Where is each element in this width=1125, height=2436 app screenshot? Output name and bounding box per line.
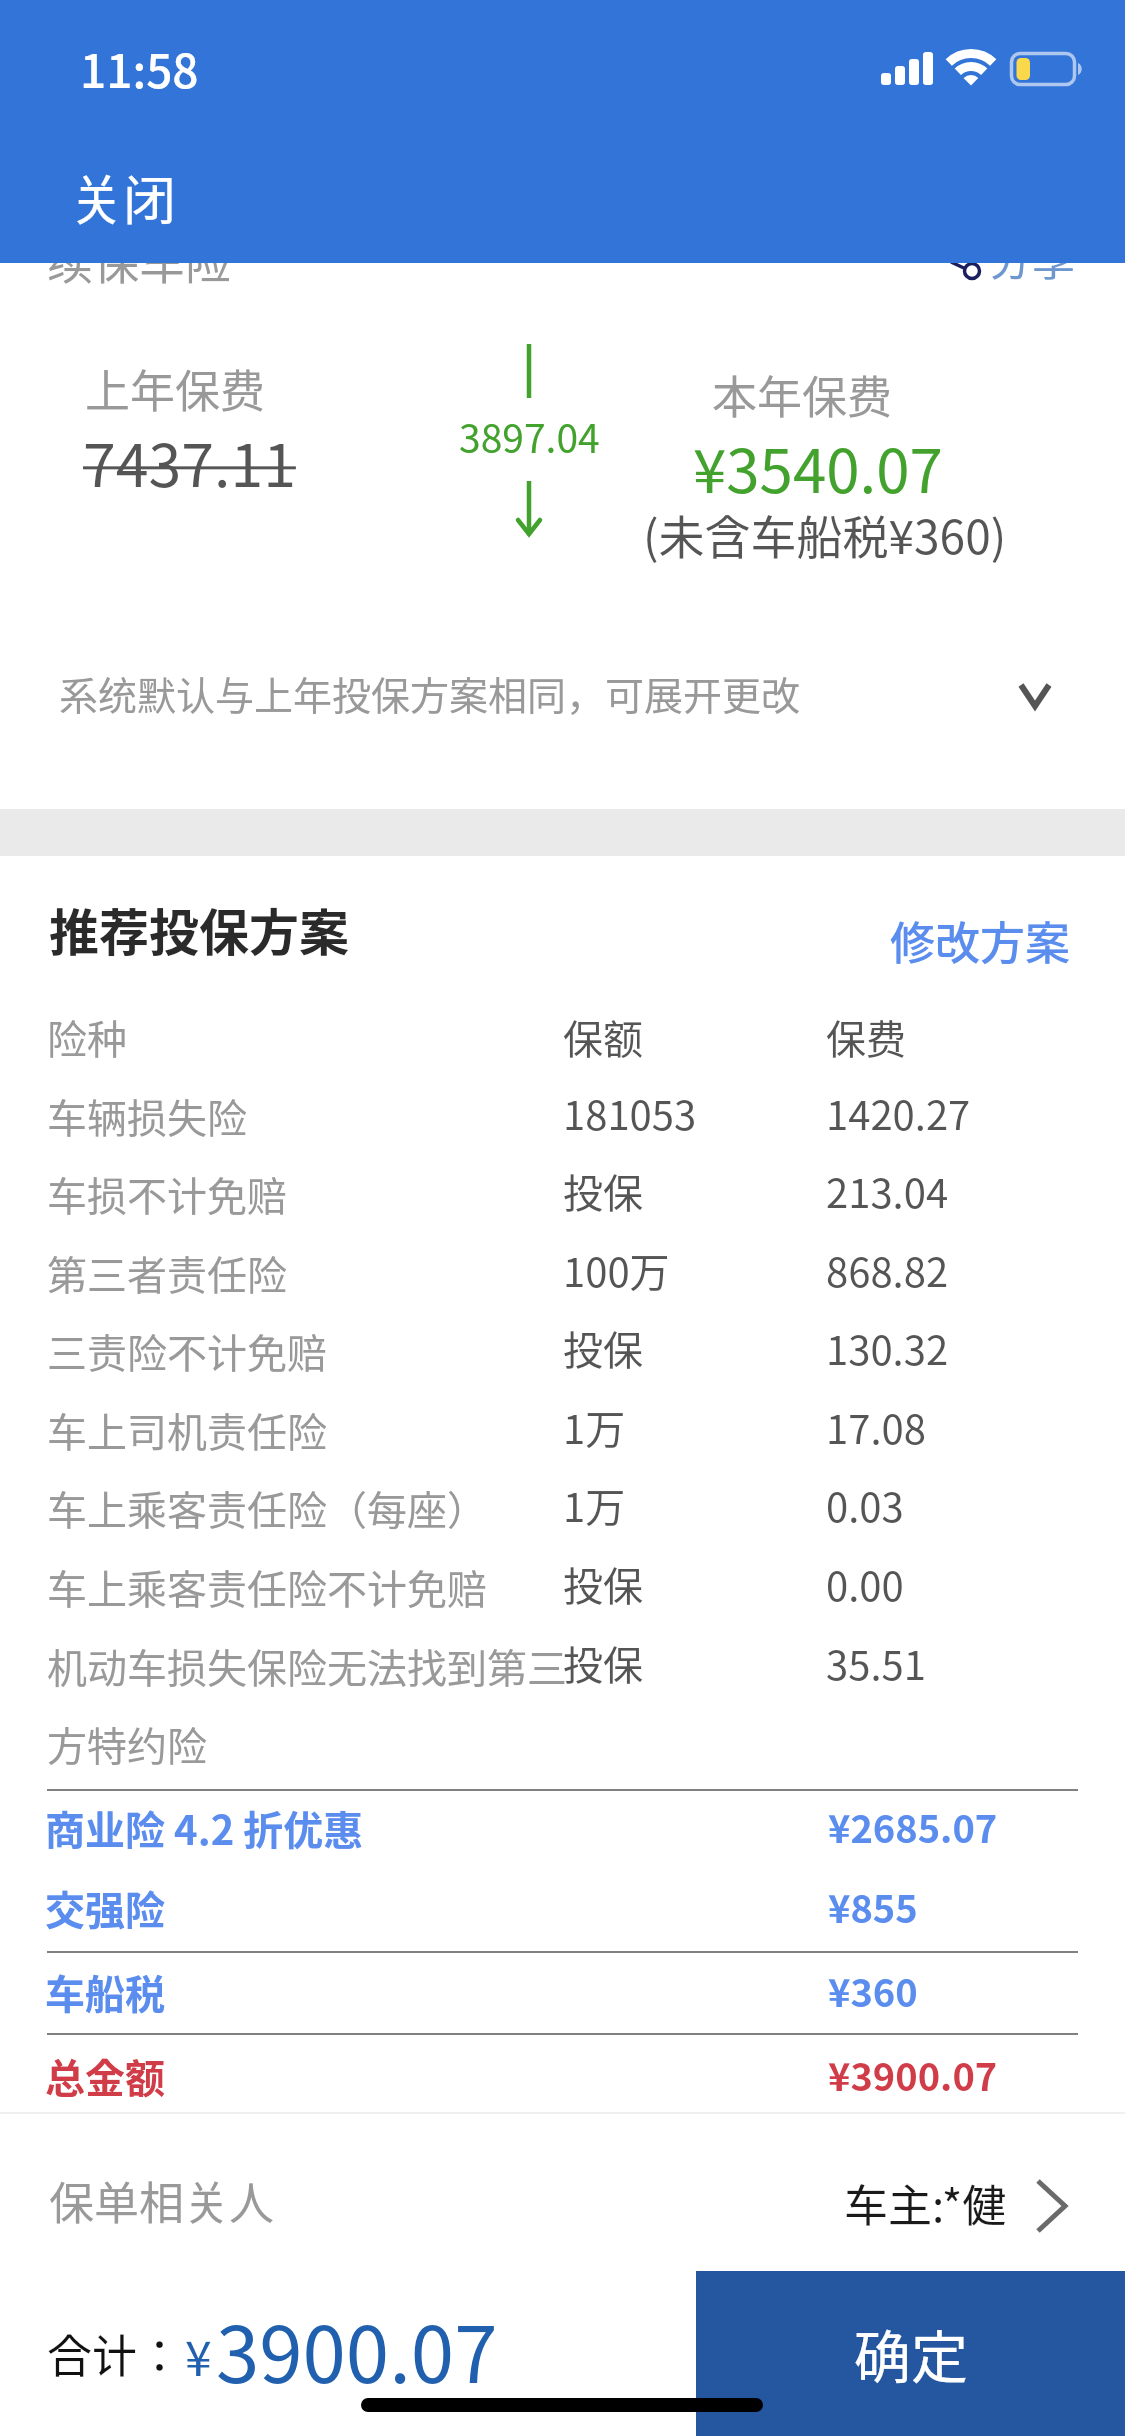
staticText: 交强险 — [45, 1879, 165, 1937]
staticText: ¥3540.07 — [693, 423, 943, 510]
staticText: 11:58 — [80, 35, 199, 102]
button[interactable]: 商业险 4.2 折优惠 — [0, 1795, 1125, 1861]
staticText: 213.04 — [826, 1162, 949, 1220]
staticText: 3900.07 — [216, 2293, 498, 2406]
staticText: 1万 — [563, 1476, 626, 1534]
staticText: 保单相关人 — [49, 2168, 275, 2233]
staticText: 7437.11 — [83, 419, 296, 504]
button[interactable]: 修改方案 — [880, 898, 1081, 983]
staticText: 0.00 — [826, 1555, 904, 1613]
staticText: 保费 — [826, 1008, 906, 1066]
staticText: 保额 — [563, 1008, 643, 1066]
staticText: 险种 — [47, 1008, 127, 1066]
button[interactable]: 确定 — [696, 2271, 1125, 2436]
staticText: 868.82 — [826, 1241, 949, 1299]
staticText: 181053 — [563, 1084, 697, 1142]
staticText: 35.51 — [826, 1634, 926, 1692]
staticText: 机动车损失保险无法找到第三 — [47, 1637, 567, 1695]
staticText: ¥3900.07 — [828, 2047, 998, 2102]
staticText: 方特约险 — [47, 1715, 207, 1773]
button[interactable]: 关闭 — [70, 159, 176, 236]
staticText: 分享 — [989, 226, 1075, 288]
staticText: 关闭 — [70, 159, 176, 236]
staticText: 车主:*健 — [844, 2171, 1007, 2235]
staticText: 车上司机责任险 — [47, 1401, 327, 1459]
staticText: 100万 — [563, 1241, 670, 1299]
staticText: 投保 — [563, 1319, 643, 1377]
staticText: ¥ — [185, 2320, 212, 2390]
staticText: 车损不计免赔 — [47, 1165, 287, 1223]
staticText: 推荐投保方案 — [49, 893, 349, 965]
staticText: 续保车险 — [47, 226, 231, 293]
staticText: 确定 — [854, 2312, 968, 2395]
staticText: 130.32 — [826, 1319, 949, 1377]
staticText: 1万 — [563, 1398, 626, 1456]
staticText: 上年保费 — [85, 356, 266, 421]
button[interactable]: 总金额 — [0, 2043, 1125, 2109]
staticText: 17.08 — [826, 1398, 926, 1456]
staticText: 修改方案 — [890, 908, 1071, 973]
staticText: 商业险 4.2 折优惠 — [45, 1799, 364, 1857]
staticText: 0.03 — [826, 1476, 904, 1534]
staticText: 投保 — [563, 1555, 643, 1613]
staticText: ¥360 — [828, 1963, 918, 2018]
staticText: 投保 — [563, 1634, 643, 1692]
staticText: 总金额 — [45, 2047, 165, 2105]
staticText: (未含车船税¥360) — [643, 501, 1007, 568]
staticText: 系统默认与上年投保方案相同，可展开更改 — [59, 665, 801, 721]
staticText: ¥2685.07 — [828, 1799, 998, 1854]
staticText: 车船税 — [45, 1963, 165, 2021]
staticText: 三责险不计免赔 — [47, 1322, 327, 1380]
button[interactable]: 交强险 — [0, 1875, 1125, 1941]
staticText: ¥855 — [828, 1879, 918, 1934]
staticText: 车上乘客责任险不计免赔 — [47, 1558, 487, 1616]
staticText: 3897.04 — [459, 408, 600, 464]
staticText: 车辆损失险 — [47, 1087, 247, 1145]
staticText: 投保 — [563, 1162, 643, 1220]
button[interactable]: 保单相关人 — [0, 2120, 1125, 2265]
staticText: 1420.27 — [826, 1084, 971, 1142]
button[interactable]: 分享 — [940, 220, 1086, 284]
staticText: 本年保费 — [712, 362, 893, 427]
staticText: 第三者责任险 — [47, 1244, 287, 1302]
staticText: 合计： — [47, 2321, 183, 2386]
button[interactable]: 车船税 — [0, 1959, 1125, 2025]
staticText: 车上乘客责任险（每座） — [47, 1479, 487, 1537]
button[interactable]: 系统默认与上年投保方案相同，可展开更改 — [0, 610, 1125, 780]
